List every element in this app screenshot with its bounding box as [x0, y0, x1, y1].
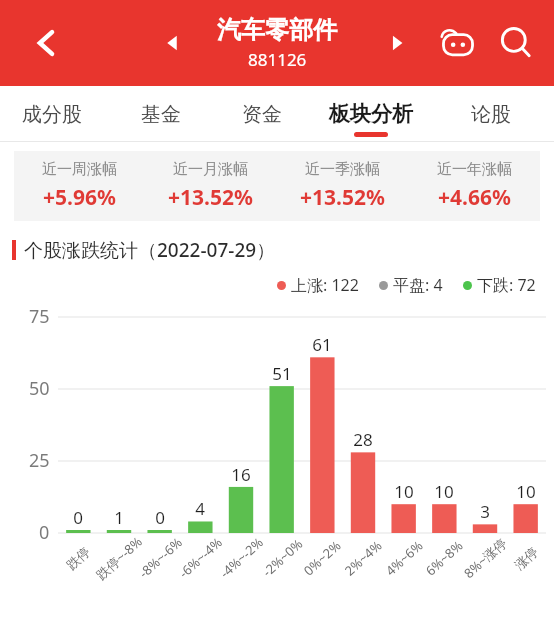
staticText: -2%~0%	[258, 535, 307, 581]
staticText: 8%~涨停	[460, 534, 510, 582]
staticText: 上涨: 122	[291, 274, 359, 296]
staticText: -8%~-6%	[135, 533, 186, 582]
button[interactable]: Search	[494, 21, 538, 65]
staticText: +5.96%	[43, 183, 116, 212]
button[interactable]: Next sector	[380, 26, 414, 60]
staticText: 6%~8%	[422, 537, 466, 579]
staticText: 16	[231, 463, 251, 486]
staticText: 近一周涨幅	[42, 160, 117, 179]
button[interactable]: 平盘: 4	[379, 274, 443, 296]
staticText: 61	[312, 333, 332, 356]
button[interactable]: 成分股	[4, 86, 100, 142]
button[interactable]: 资金	[226, 86, 298, 142]
staticText: 基金	[141, 102, 181, 127]
staticText: 75	[29, 304, 50, 329]
staticText: 跌停	[63, 543, 93, 573]
button[interactable]: Assistant robot	[436, 21, 480, 65]
button[interactable]: 基金	[125, 86, 197, 142]
staticText: 跌停~-8%	[92, 533, 146, 583]
staticText: 50	[29, 376, 50, 401]
staticText: 4%~6%	[382, 537, 426, 579]
staticText: 2%~4%	[341, 537, 385, 579]
staticText: 近一季涨幅	[305, 160, 380, 179]
staticText: 板块分析	[329, 101, 413, 127]
button[interactable]: Back	[26, 22, 68, 64]
staticText: 0	[155, 506, 165, 529]
staticText: 个股涨跌统计（2022-07-29）	[24, 237, 276, 263]
staticText: 10	[434, 480, 454, 503]
staticText: 0%~2%	[300, 537, 344, 579]
staticText: -4%~-2%	[216, 533, 267, 582]
staticText: -6%~-4%	[175, 533, 226, 582]
staticText: +4.66%	[438, 183, 511, 212]
staticText: 资金	[242, 102, 282, 127]
button[interactable]: 近一周涨幅	[14, 151, 540, 221]
staticText: 25	[29, 448, 50, 473]
staticText: 10	[516, 480, 536, 503]
button[interactable]: Previous sector	[155, 26, 189, 60]
staticText: 涨停	[511, 543, 541, 573]
staticText: +13.52%	[300, 183, 385, 212]
staticText: 28	[353, 428, 373, 451]
staticText: 51	[272, 362, 292, 385]
staticText: 近一年涨幅	[437, 160, 512, 179]
staticText: 0	[39, 520, 50, 545]
button[interactable]: 下跌: 72	[463, 274, 536, 296]
staticText: 0	[73, 506, 83, 529]
staticText: 汽车零部件	[217, 15, 337, 45]
staticText: 成分股	[22, 102, 82, 127]
staticText: +13.52%	[168, 183, 253, 212]
staticText: 1	[114, 506, 124, 529]
staticText: 3	[480, 500, 490, 523]
staticText: 近一月涨幅	[173, 160, 248, 179]
button[interactable]: 上涨: 122	[277, 274, 359, 296]
staticText: 4	[195, 497, 205, 520]
staticText: 881126	[248, 48, 307, 71]
staticText: 论股	[471, 102, 511, 127]
staticText: 10	[394, 480, 414, 503]
button[interactable]: 论股	[455, 86, 527, 142]
staticText: 平盘: 4	[393, 274, 443, 296]
staticText: 下跌: 72	[477, 274, 536, 296]
button[interactable]: 板块分析	[311, 86, 431, 142]
